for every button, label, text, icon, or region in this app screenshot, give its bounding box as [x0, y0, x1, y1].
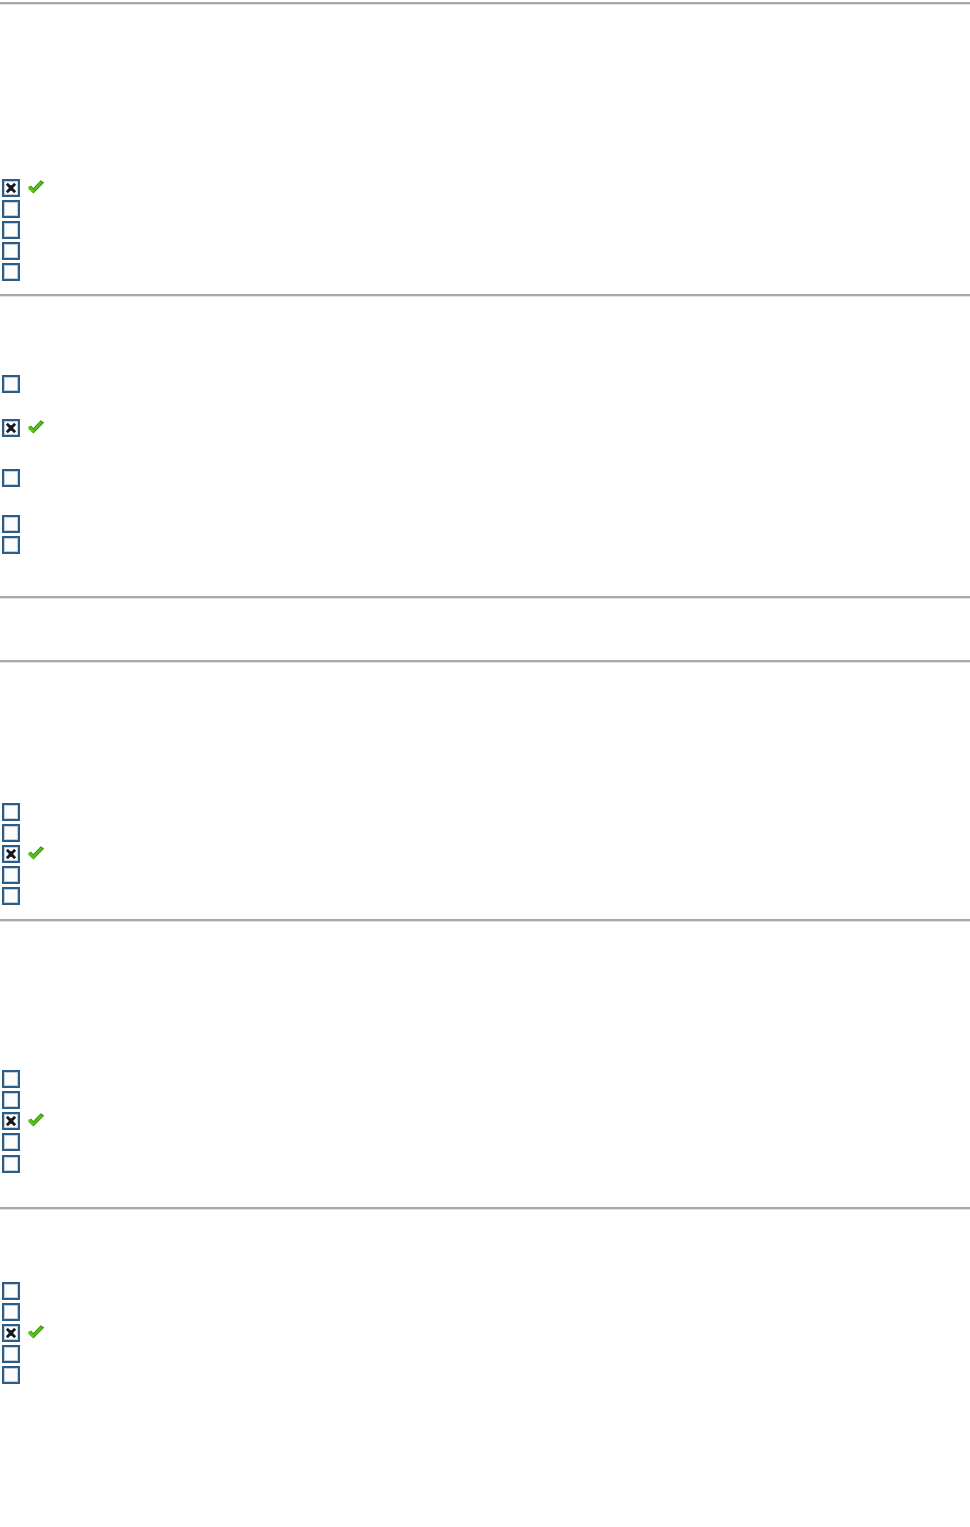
button[interactable]: Option 3, selected — [0, 1322, 970, 1343]
button[interactable]: Option 1, selected — [0, 178, 970, 198]
button[interactable]: Option 5 — [0, 1364, 970, 1385]
button[interactable]: Option 2, selected — [0, 417, 970, 439]
button[interactable]: Option 5 — [0, 885, 970, 906]
button[interactable]: Option 4 — [0, 864, 970, 885]
button[interactable]: Option 2 — [0, 198, 970, 219]
button[interactable]: Option 4 — [0, 513, 970, 534]
button[interactable]: Option 1 — [0, 1068, 970, 1089]
button[interactable]: Option 3 — [0, 467, 970, 489]
button[interactable]: Option 5 — [0, 534, 970, 555]
button[interactable]: Option 4 — [0, 1131, 970, 1153]
button[interactable]: Option 2 — [0, 1301, 970, 1322]
button[interactable]: Option 4 — [0, 240, 970, 261]
button[interactable]: Option 3, selected — [0, 843, 970, 864]
button[interactable]: Option 4 — [0, 1343, 970, 1364]
button[interactable]: Option 1 — [0, 1280, 970, 1301]
button[interactable]: Option 2 — [0, 1089, 970, 1110]
button[interactable]: Option 5 — [0, 261, 970, 282]
button[interactable]: Option 3 — [0, 219, 970, 240]
button[interactable]: Option 1 — [0, 801, 970, 822]
button[interactable]: Option 1 — [0, 373, 970, 395]
button[interactable]: Option 3, selected — [0, 1110, 970, 1131]
button[interactable]: Option 2 — [0, 822, 970, 843]
button[interactable]: Option 5 — [0, 1153, 970, 1175]
